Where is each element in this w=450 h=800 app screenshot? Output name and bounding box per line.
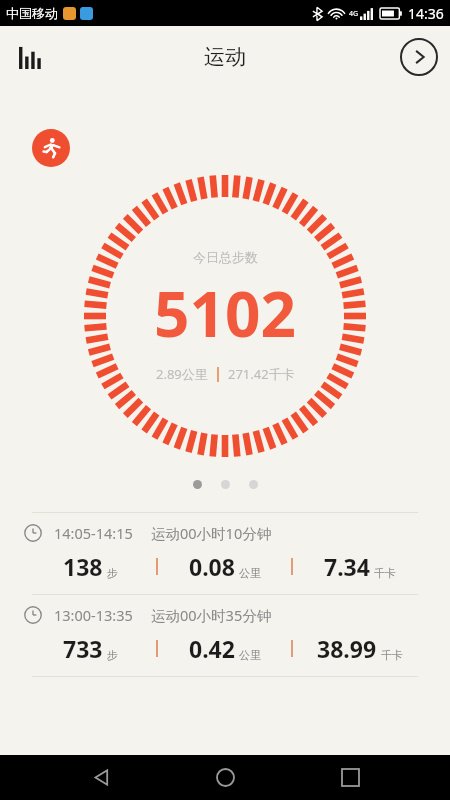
staticText: 步 [107,648,118,662]
staticText: 38.99 [317,633,377,664]
button[interactable]: 14:05-14:15 [0,513,450,594]
button[interactable]: 13:00-13:35 [0,595,450,676]
staticText: 运动00小时10分钟 [151,523,272,543]
staticText: 中国移动 [6,5,58,21]
staticText: 14:05-14:15 [54,523,133,543]
staticText: 13:00-13:35 [54,605,133,625]
staticText: 运动 [204,44,246,70]
staticText: 千卡 [374,566,396,580]
button[interactable]: Home [201,755,249,800]
staticText: 138 [63,551,103,582]
staticText: 今日总步数 [193,249,258,265]
staticText: 14:36 [408,4,444,23]
staticText: 公里 [239,566,261,580]
button[interactable]: Back [77,755,125,800]
staticText: 0.42 [189,633,235,664]
staticText: 步 [107,566,118,580]
staticText: 2.89公里 [156,365,208,383]
button[interactable]: Statistics [8,34,54,80]
staticText: 4G [349,9,359,19]
staticText: 运动00小时35分钟 [151,605,272,625]
staticText: 0.08 [189,551,235,582]
staticText: 千卡 [381,648,403,662]
staticText: 7.34 [324,551,370,582]
staticText: 271.42千卡 [228,365,295,383]
button[interactable]: Recent apps [326,755,374,800]
staticText: 733 [63,633,103,664]
button[interactable]: Next [396,34,442,80]
staticText: 公里 [239,648,261,662]
button[interactable]: Running activity [32,129,70,167]
staticText: 5102 [154,271,296,355]
